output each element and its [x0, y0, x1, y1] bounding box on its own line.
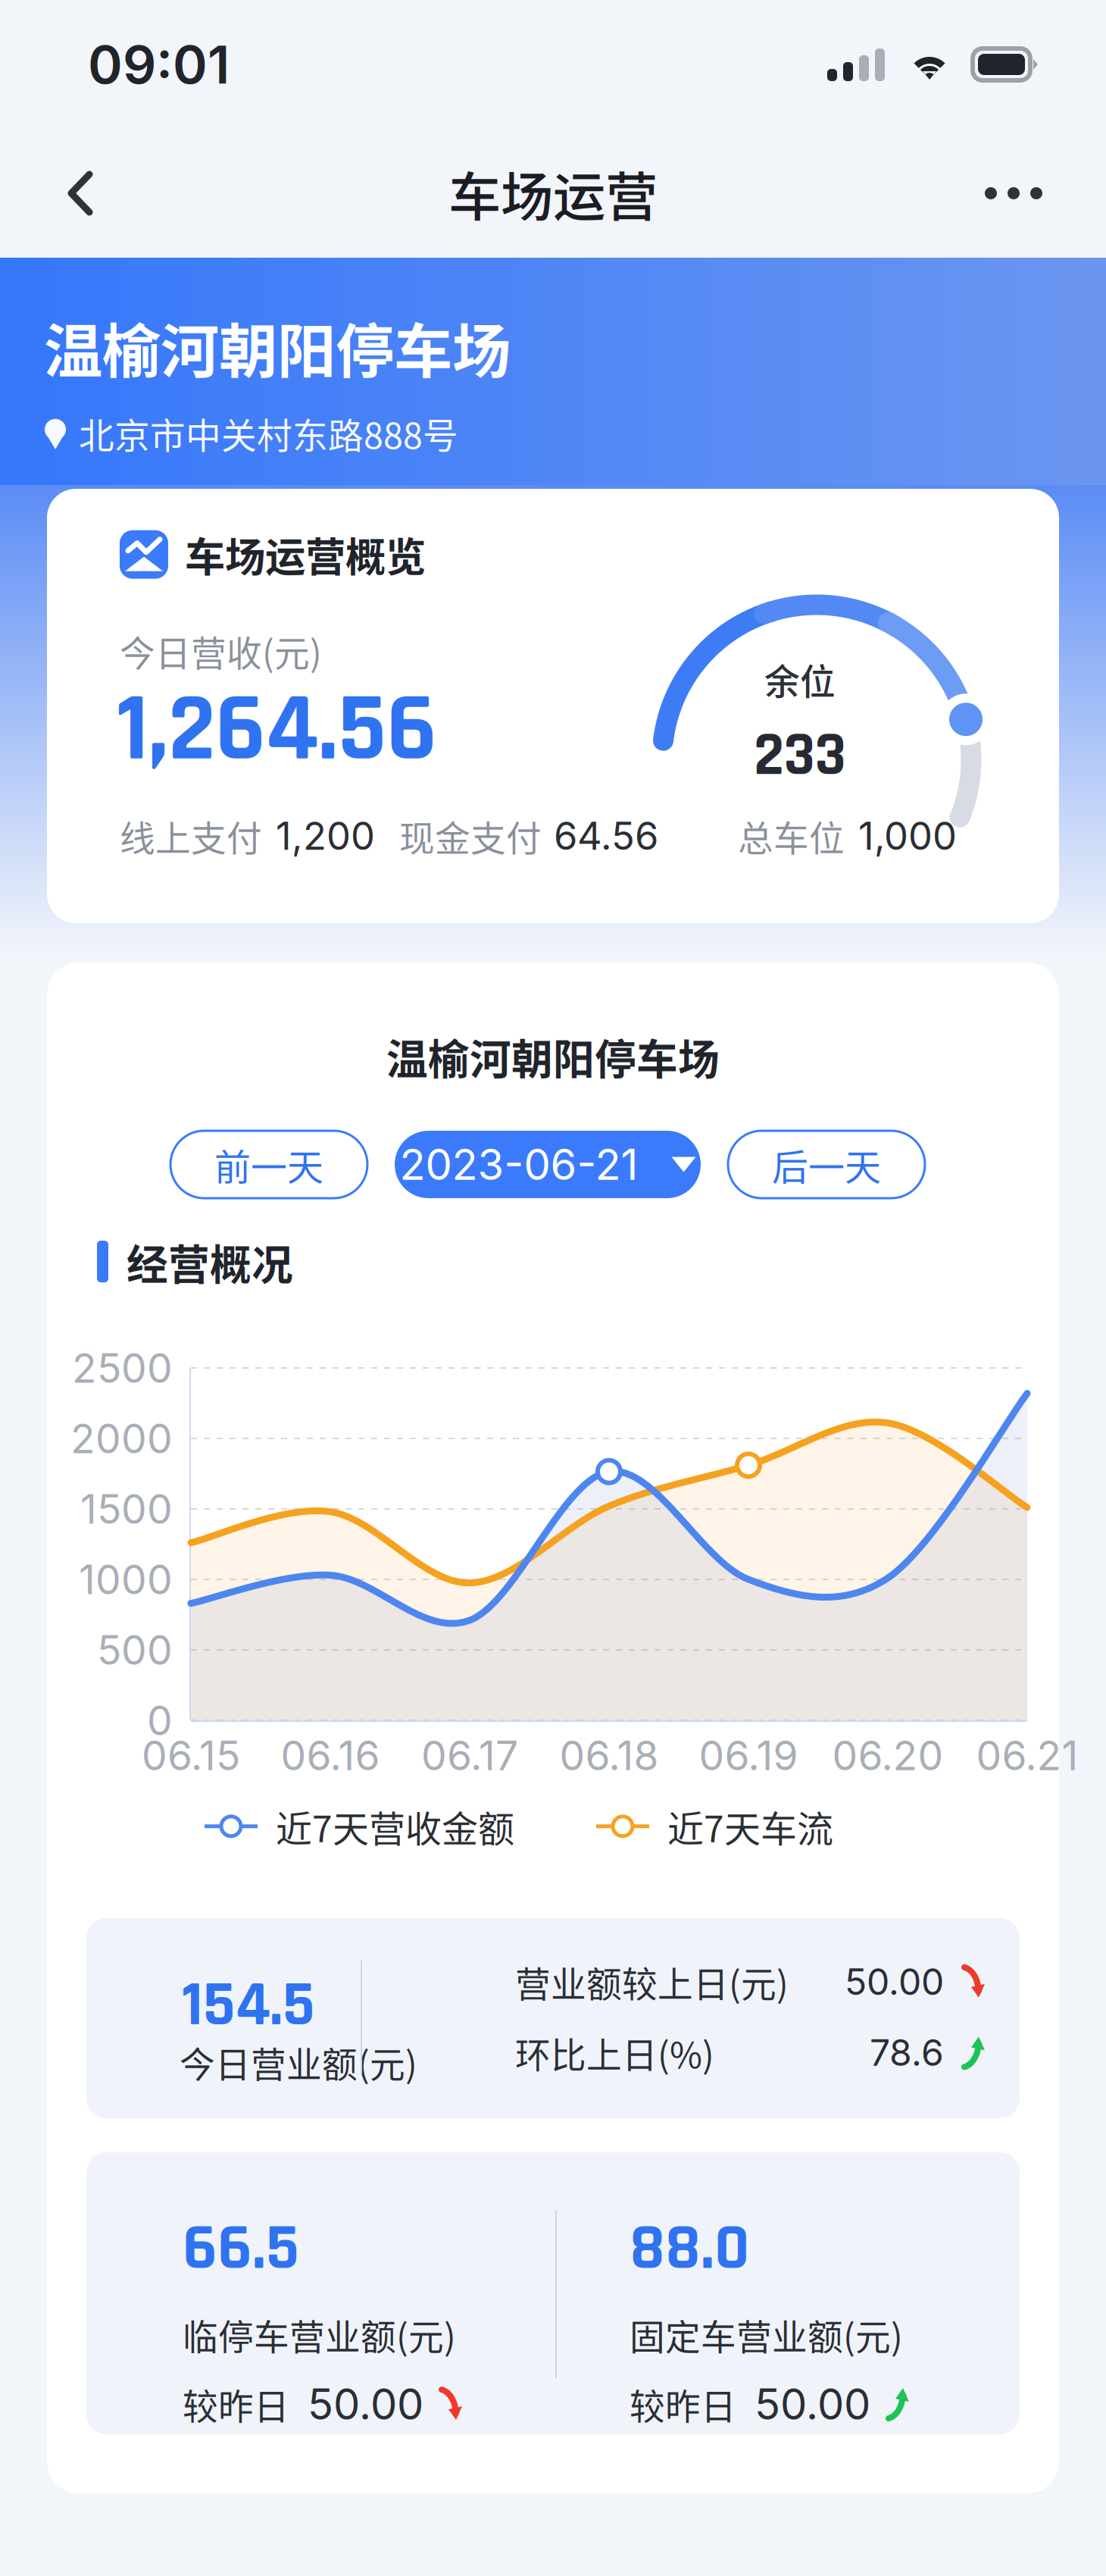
staticText: 233 — [754, 717, 846, 795]
staticText: 近7天营收金额 — [276, 1800, 514, 1853]
staticText: 06.21 — [976, 1731, 1078, 1780]
staticText: 总车位 — [738, 810, 845, 861]
staticText: 66.5 — [183, 2207, 299, 2291]
staticText: 较昨日 — [630, 2378, 736, 2430]
staticText: 温榆河朝阳停车场 — [386, 1026, 720, 1086]
staticText: 1500 — [80, 1484, 173, 1533]
staticText: 前一天 — [214, 1138, 323, 1191]
staticText: 1,264.56 — [117, 669, 437, 792]
staticText: 固定车营业额(元) — [630, 2309, 903, 2360]
staticText: 温榆河朝阳停车场 — [44, 305, 511, 390]
staticText: 余位 — [764, 653, 836, 705]
staticText: 今日营业额(元) — [180, 2036, 417, 2088]
staticText: 88.0 — [630, 2207, 749, 2291]
staticText: 2023-06-21 — [400, 1139, 638, 1190]
staticText: 06.18 — [559, 1731, 659, 1780]
staticText: 2000 — [70, 1414, 173, 1463]
staticText: 78.6 — [870, 2031, 944, 2075]
staticText: 50.00 — [755, 2378, 870, 2430]
button[interactable]: 前一天 — [170, 1131, 367, 1198]
staticText: 线上支付 — [120, 810, 262, 861]
staticText: 64.56 — [554, 813, 658, 859]
staticText: 50.00 — [845, 1960, 944, 2004]
staticText: 500 — [97, 1625, 173, 1674]
staticText: 后一天 — [772, 1138, 881, 1191]
staticText: 06.20 — [832, 1731, 944, 1780]
staticText: 今日营收(元) — [120, 625, 322, 676]
staticText: 50.00 — [308, 2378, 423, 2430]
staticText: 09:01 — [88, 33, 230, 96]
staticText: 154.5 — [182, 1965, 315, 2046]
button[interactable]: 更多 — [953, 143, 1074, 243]
staticText: 0 — [147, 1696, 173, 1745]
staticText: 临停车营业额(元) — [183, 2309, 456, 2360]
staticText: 1000 — [79, 1555, 173, 1604]
staticText: 06.17 — [421, 1731, 518, 1780]
staticText: 环比上日(%) — [515, 2027, 714, 2078]
staticText: 较昨日 — [183, 2378, 289, 2430]
staticText: 车场运营 — [448, 155, 658, 231]
button[interactable]: 返回 — [32, 129, 129, 258]
staticText: 北京市中关村东路888号 — [79, 408, 458, 459]
staticText: 近7天车流 — [667, 1800, 833, 1853]
staticText: 1,000 — [858, 813, 957, 859]
staticText: 营业额较上日(元) — [515, 1956, 789, 2007]
staticText: 06.16 — [281, 1731, 380, 1780]
staticText: 现金支付 — [399, 810, 542, 861]
staticText: 车场运营概览 — [185, 525, 426, 584]
staticText: 06.19 — [699, 1731, 798, 1780]
staticText: 06.15 — [142, 1731, 240, 1780]
staticText: 2500 — [72, 1343, 173, 1392]
staticText: 1,200 — [276, 813, 375, 859]
button[interactable]: 2023-06-21 — [395, 1131, 701, 1198]
staticText: 经营概况 — [127, 1232, 293, 1292]
button[interactable]: 后一天 — [728, 1131, 925, 1198]
